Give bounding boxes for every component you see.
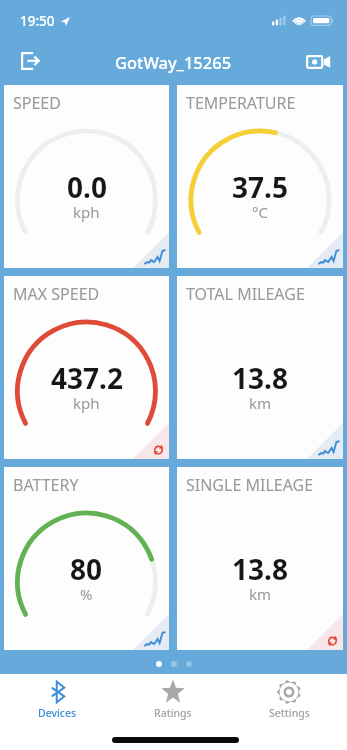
button[interactable]: Chart	[307, 423, 343, 459]
staticText: 13.8	[232, 550, 288, 588]
staticText: km	[249, 584, 272, 604]
staticText: SPEED	[13, 92, 61, 114]
staticText: TOTAL MILEAGE	[186, 283, 305, 305]
button[interactable]: Devices	[0, 674, 115, 724]
staticText: °C	[252, 202, 268, 222]
staticText: 13.8	[232, 359, 288, 397]
staticText: GotWay_15265	[115, 51, 232, 73]
button[interactable]: Ratings	[115, 674, 231, 724]
button[interactable]: Disconnect	[11, 43, 51, 83]
staticText: 80	[70, 550, 103, 588]
staticText: 19:50	[20, 12, 55, 30]
button[interactable]: Chart	[133, 614, 169, 650]
staticText: km	[249, 393, 272, 413]
staticText: Ratings	[154, 706, 192, 720]
button[interactable]: TEMPERATURE	[177, 85, 343, 268]
button[interactable]: TOTAL MILEAGE	[177, 276, 343, 459]
button[interactable]: Settings	[231, 674, 347, 724]
staticText: 437.2	[51, 359, 123, 397]
staticText: Devices	[38, 706, 77, 720]
button[interactable]: Chart	[133, 232, 169, 268]
button[interactable]: SINGLE MILEAGE	[177, 467, 343, 650]
staticText: kph	[73, 202, 100, 222]
button[interactable]: SPEED	[4, 85, 169, 268]
button[interactable]: MAX SPEED	[4, 276, 169, 459]
staticText: %	[80, 584, 93, 604]
staticText: TEMPERATURE	[186, 92, 296, 114]
staticText: kph	[73, 393, 100, 413]
staticText: Settings	[269, 706, 310, 720]
staticText: BATTERY	[13, 474, 79, 496]
button[interactable]: Chart	[307, 232, 343, 268]
staticText: MAX SPEED	[13, 283, 100, 305]
staticText: 0.0	[67, 168, 107, 206]
button[interactable]: BATTERY	[4, 467, 169, 650]
button[interactable]: Record video	[300, 43, 340, 83]
staticText: SINGLE MILEAGE	[186, 474, 314, 496]
button[interactable]: Reset	[307, 614, 343, 650]
staticText: 37.5	[232, 168, 288, 206]
button[interactable]: Reset	[133, 423, 169, 459]
